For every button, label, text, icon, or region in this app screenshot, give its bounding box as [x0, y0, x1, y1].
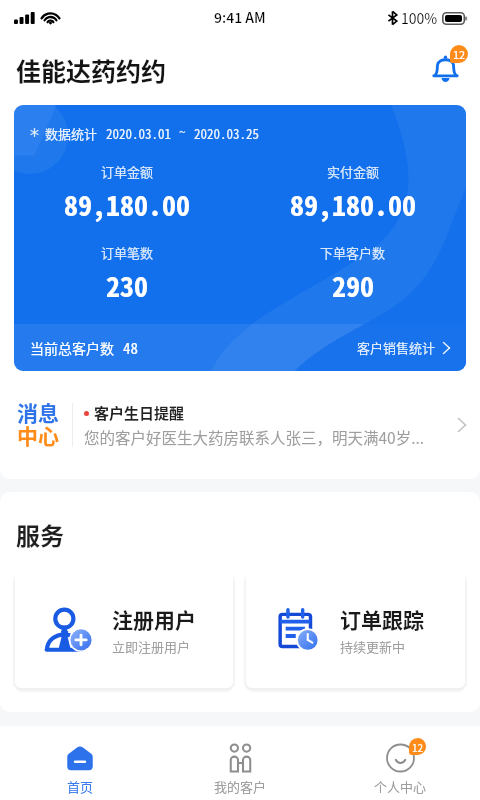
staticText: 9:41 AM — [214, 7, 266, 27]
staticText: 数据统计 — [45, 124, 98, 143]
button[interactable]: 消息 — [0, 371, 480, 479]
staticText: 89,180.00 — [64, 184, 191, 225]
button[interactable]: 我的客户 — [160, 726, 320, 800]
staticText: 订单金额 — [101, 162, 154, 181]
button[interactable]: 订单跟踪 — [246, 572, 465, 688]
staticText: 我的客户 — [214, 777, 267, 796]
staticText: 12 — [412, 740, 424, 754]
staticText: 持续更新中 — [340, 637, 406, 656]
staticText: 实付金额 — [327, 162, 380, 181]
button[interactable]: Notifications — [420, 48, 466, 94]
button[interactable]: 12 — [320, 726, 480, 800]
button[interactable]: 首页 — [0, 726, 160, 800]
staticText: 230 — [106, 265, 149, 306]
staticText: 首页 — [67, 777, 94, 796]
staticText: 客户销售统计 — [357, 338, 436, 357]
staticText: 89,180.00 — [290, 184, 417, 225]
staticText: 下单客户数 — [320, 243, 386, 262]
staticText: 2020.03.01 — [106, 124, 171, 143]
staticText: 12 — [453, 46, 466, 62]
staticText: 48 — [123, 337, 139, 359]
staticText: 290 — [332, 265, 375, 306]
staticText: 佳能达药约约 — [16, 52, 167, 88]
staticText: 订单笔数 — [101, 243, 154, 262]
button[interactable]: 注册用户 — [15, 572, 233, 688]
staticText: 个人中心 — [374, 777, 427, 796]
staticText: 2020.03.25 — [194, 124, 259, 143]
staticText: 订单跟踪 — [340, 604, 424, 634]
staticText: 立即注册用户 — [112, 637, 191, 656]
staticText: 100% — [401, 8, 438, 28]
staticText: 中心 — [17, 420, 59, 450]
staticText: 当前总客户数 — [30, 338, 114, 358]
staticText: 服务 — [16, 517, 64, 552]
staticText: 注册用户 — [112, 604, 196, 634]
button[interactable]: 数据统计 — [14, 105, 466, 371]
staticText: 您的客户好医生大药房联系人张三，明天满40岁... — [84, 426, 425, 448]
staticText: ~ — [179, 122, 186, 141]
staticText: 消息 — [17, 397, 59, 427]
staticText: 客户生日提醒 — [94, 402, 185, 424]
